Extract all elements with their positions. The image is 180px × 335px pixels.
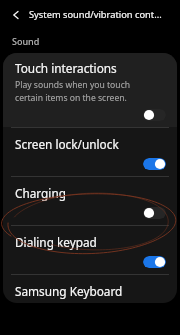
button[interactable]: On [143, 158, 166, 170]
staticText: Play sounds when you touch [15, 79, 131, 91]
staticText: Sound [12, 35, 40, 47]
staticText: System sound/vibration cont... [29, 8, 162, 21]
staticText: Charging [15, 185, 66, 201]
button[interactable]: Off [143, 109, 166, 121]
button[interactable]: Back [6, 5, 26, 25]
staticText: Touch interactions [15, 60, 117, 76]
button[interactable]: Charging [3, 177, 177, 225]
button[interactable]: Touch interactions [3, 53, 177, 127]
button[interactable]: Off [143, 207, 166, 219]
button[interactable]: Screen lock/unlock [3, 128, 177, 176]
staticText: Dialing keypad [15, 234, 97, 250]
button[interactable]: Dialing keypad [3, 226, 177, 274]
staticText: Screen lock/unlock [15, 136, 119, 152]
button[interactable]: On [143, 256, 166, 268]
staticText: Samsung Keyboard [15, 283, 123, 299]
button[interactable]: Samsung Keyboard [3, 275, 177, 303]
staticText: certain items on the screen. [15, 92, 127, 104]
